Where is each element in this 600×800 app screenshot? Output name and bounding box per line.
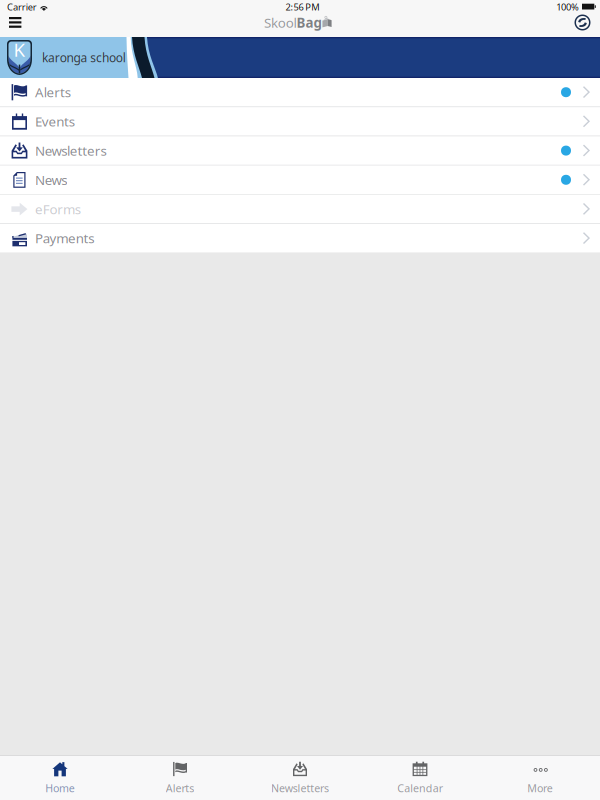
staticText: Payments bbox=[35, 229, 94, 247]
button[interactable]: Menu bbox=[0, 14, 33, 37]
button[interactable]: News bbox=[0, 166, 600, 194]
staticText: Bag bbox=[297, 14, 321, 31]
staticText: More bbox=[527, 781, 553, 795]
staticText: Carrier bbox=[7, 1, 37, 13]
staticText: Alerts bbox=[166, 781, 194, 795]
button[interactable]: Payments bbox=[0, 224, 600, 252]
staticText: Calendar bbox=[397, 781, 443, 795]
button[interactable]: More bbox=[480, 756, 600, 800]
staticText: Events bbox=[35, 112, 75, 130]
button[interactable]: Sync bbox=[563, 14, 600, 37]
staticText: 100% bbox=[556, 1, 579, 13]
button[interactable]: Newsletters bbox=[240, 756, 360, 800]
button[interactable]: Alerts bbox=[0, 78, 600, 106]
staticText: News bbox=[35, 171, 67, 189]
button[interactable]: Home bbox=[0, 756, 120, 800]
staticText: Skool bbox=[264, 14, 297, 31]
button[interactable]: Newsletters bbox=[0, 136, 600, 165]
staticText: Home bbox=[45, 781, 75, 795]
staticText: K bbox=[13, 37, 25, 62]
staticText: Newsletters bbox=[35, 142, 106, 159]
button[interactable]: eForms bbox=[0, 195, 600, 223]
staticText: karonga school bbox=[42, 49, 126, 65]
staticText: Newsletters bbox=[271, 781, 329, 795]
staticText: 2:56 PM bbox=[286, 1, 319, 13]
button[interactable]: Events bbox=[0, 107, 600, 136]
button[interactable]: Alerts bbox=[120, 756, 240, 800]
staticText: eForms bbox=[35, 200, 81, 218]
button[interactable]: Calendar bbox=[360, 756, 480, 800]
staticText: Alerts bbox=[35, 83, 71, 101]
